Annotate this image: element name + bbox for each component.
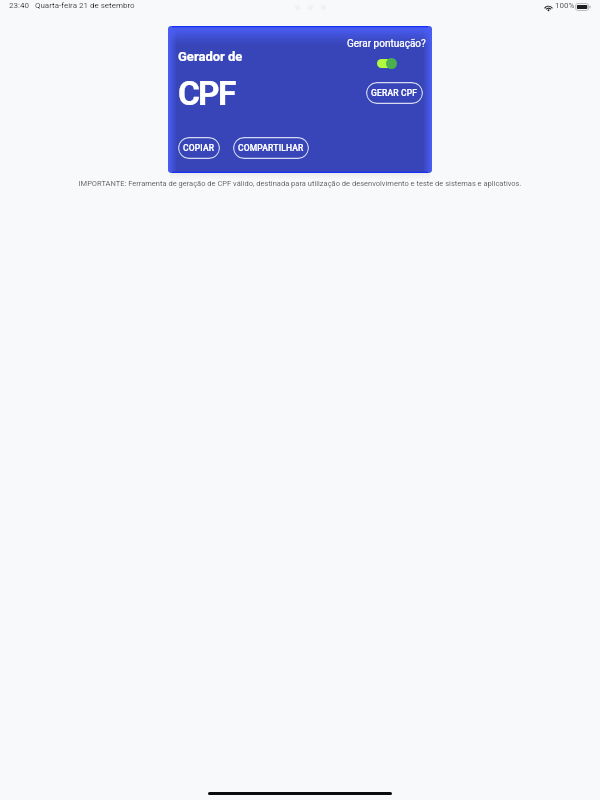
- button[interactable]: Gerar pontuação: [370, 49, 406, 73]
- staticText: GERAR CPF: [371, 88, 418, 98]
- button[interactable]: COMPARTILHAR: [233, 137, 309, 159]
- staticText: Gerador de: [178, 49, 243, 64]
- button[interactable]: GERAR CPF: [366, 82, 423, 104]
- staticText: 23:40 Quarta-feira 21 de setembro: [9, 1, 135, 10]
- button[interactable]: COPIAR: [178, 137, 220, 159]
- staticText: CPF: [178, 74, 235, 113]
- staticText: IMPORTANTE: Ferramenta de geração de CPF…: [0, 179, 600, 188]
- staticText: COMPARTILHAR: [238, 143, 304, 153]
- staticText: Gerar pontuação?: [347, 38, 426, 50]
- staticText: COPIAR: [183, 143, 215, 153]
- staticText: 100%: [555, 1, 575, 10]
